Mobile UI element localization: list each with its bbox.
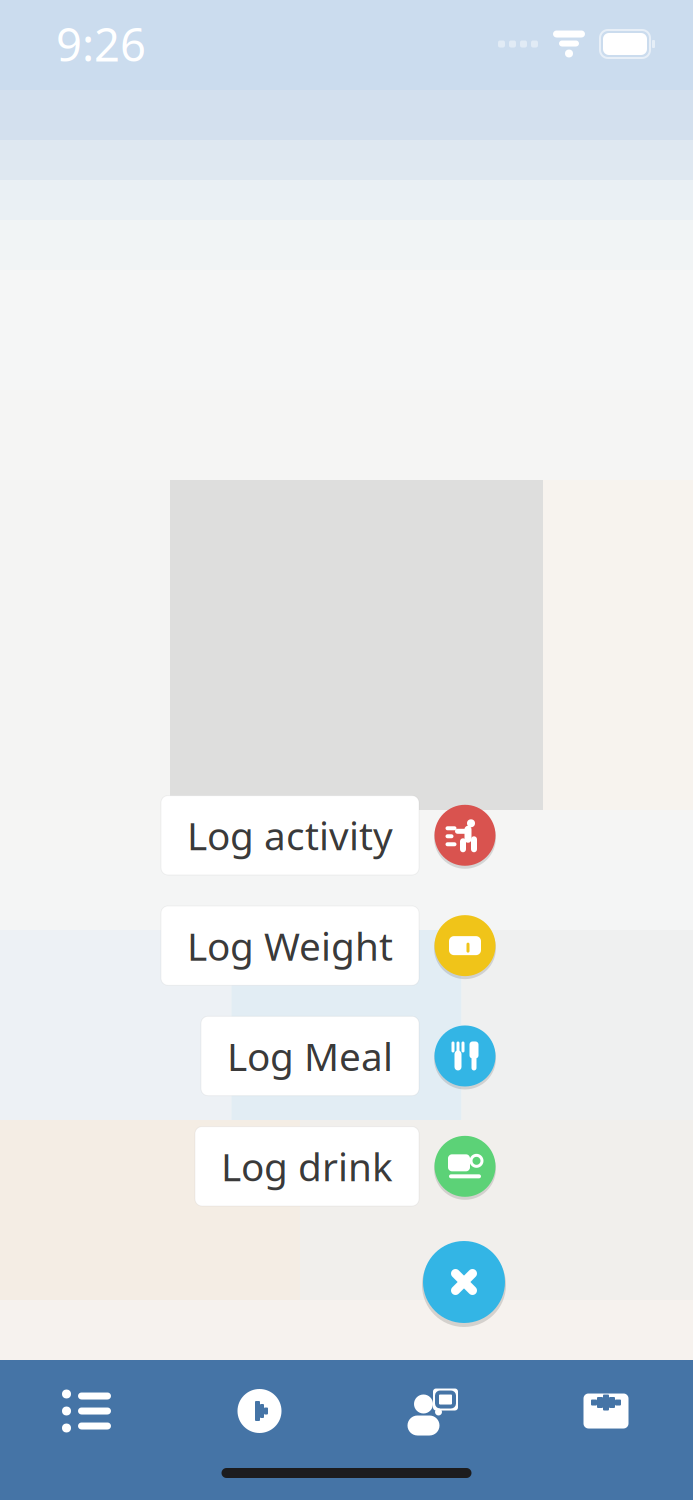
button[interactable]: Log Weight xyxy=(161,906,532,985)
staticText: Log drink xyxy=(221,1141,393,1192)
button[interactable]: Videos xyxy=(173,1372,346,1450)
button[interactable]: Feed xyxy=(0,1372,173,1450)
staticText: Log activity xyxy=(187,810,393,861)
button[interactable]: Log Meal xyxy=(201,1016,532,1096)
staticText: Log Weight xyxy=(187,920,393,971)
button[interactable]: Close menu xyxy=(419,1236,509,1328)
staticText: Log Meal xyxy=(227,1030,393,1082)
staticText: 9:26 xyxy=(56,14,146,74)
button[interactable]: Log drink xyxy=(195,1127,532,1206)
button[interactable]: Log activity xyxy=(161,796,532,875)
button[interactable]: Community xyxy=(346,1372,519,1450)
button[interactable]: Messages xyxy=(519,1372,693,1450)
